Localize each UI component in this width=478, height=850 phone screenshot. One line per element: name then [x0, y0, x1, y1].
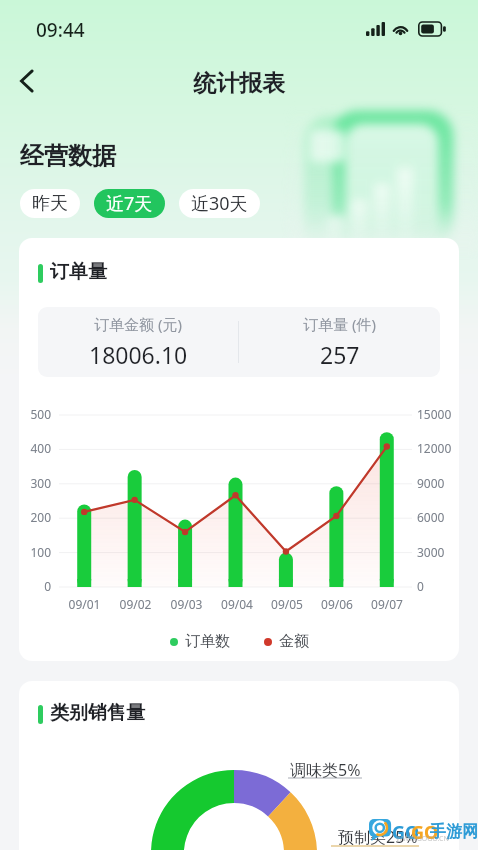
staticText: 近30天: [191, 191, 248, 216]
staticText: 3000: [417, 544, 445, 560]
staticText: 09/07: [362, 596, 412, 612]
staticText: 09/04: [212, 596, 262, 612]
staticText: 手游网: [430, 822, 478, 842]
staticText: 订单量 (件): [303, 314, 376, 334]
staticText: 订单数: [185, 632, 230, 651]
staticText: 类别销售量: [50, 701, 145, 725]
staticText: 昨天: [32, 192, 68, 215]
staticText: 金额: [279, 632, 309, 651]
staticText: 预制类25%: [338, 826, 418, 848]
staticText: 统计报表: [0, 69, 478, 98]
staticText: 6000: [417, 509, 445, 525]
staticText: 09/05: [262, 596, 312, 612]
staticText: 0: [417, 578, 424, 594]
staticText: 500: [19, 406, 51, 422]
staticText: 09/03: [161, 596, 212, 612]
staticText: 经营数据: [20, 141, 116, 171]
button[interactable]: 近7天: [94, 189, 165, 218]
staticText: 257: [320, 339, 360, 370]
staticText: 300: [19, 475, 51, 491]
staticText: 18006.10: [89, 339, 188, 370]
staticText: 09/06: [312, 596, 362, 612]
staticText: 调味类5%: [290, 759, 361, 781]
staticText: 9000: [417, 475, 445, 491]
staticText: 200: [19, 509, 51, 525]
staticText: 400: [19, 440, 51, 456]
staticText: 15000: [417, 406, 452, 422]
staticText: 09:44: [36, 17, 85, 43]
button[interactable]: 近30天: [179, 189, 260, 218]
staticText: GO: [392, 820, 420, 845]
staticText: WWW.GOGO.CN: [396, 834, 449, 844]
staticText: 近7天: [106, 191, 153, 216]
staticText: 0: [19, 578, 51, 594]
button[interactable]: Back: [3, 57, 51, 105]
button[interactable]: 昨天: [20, 189, 80, 218]
staticText: 12000: [417, 440, 452, 456]
staticText: 订单金额 (元): [94, 314, 182, 334]
staticText: 100: [19, 544, 51, 560]
staticText: GO: [411, 820, 439, 845]
staticText: 订单量: [50, 260, 107, 284]
staticText: 09/02: [110, 596, 161, 612]
staticText: 09/01: [59, 596, 110, 612]
